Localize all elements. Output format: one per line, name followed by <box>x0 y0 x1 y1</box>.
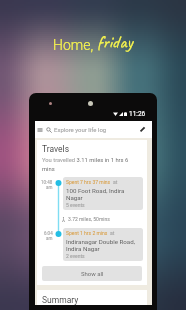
button[interactable]: Menu <box>35 121 152 138</box>
staticText: Show all <box>81 270 104 277</box>
staticText: am <box>46 185 53 190</box>
staticText: 11:26 <box>129 110 146 118</box>
staticText: Spent 7 hrs 37 mins <box>66 179 111 185</box>
staticText: Explore your life log <box>54 126 107 133</box>
staticText: Summary <box>42 295 79 305</box>
staticText: am <box>46 236 53 241</box>
staticText: 6:04 <box>44 231 53 236</box>
button[interactable]: 6:04 <box>37 228 147 261</box>
staticText: Home, <box>53 37 94 53</box>
staticText: at <box>113 179 118 185</box>
button[interactable]: Edit <box>138 125 147 134</box>
staticText: 3.72 miles, 50mins <box>68 216 110 222</box>
staticText: at <box>110 230 115 236</box>
other: Menu <box>37 127 43 133</box>
button[interactable]: Summary <box>37 290 147 305</box>
staticText: 2 events <box>66 253 85 259</box>
staticText: You travelled 3.11 miles in 1 hrs 6 mins <box>42 157 139 172</box>
staticText: Travels <box>42 144 70 154</box>
staticText: Spent 1 hrs 2 mins <box>66 230 108 236</box>
staticText: friday <box>97 31 133 54</box>
staticText: 5 events <box>66 202 85 208</box>
button[interactable]: 10:48 <box>37 177 147 210</box>
staticText: 10:48 <box>41 180 53 185</box>
button[interactable]: Show all <box>42 266 142 281</box>
staticText: Indiranagar Double Road, Indira Nagar <box>66 238 140 252</box>
staticText: 100 Foot Road, Indira Nagar <box>66 187 140 201</box>
